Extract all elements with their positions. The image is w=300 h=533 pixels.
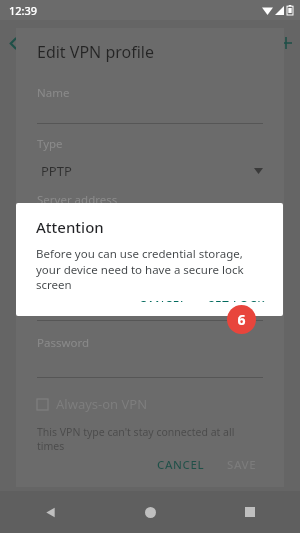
button[interactable]: SET LOCK	[201, 292, 273, 307]
button[interactable]: Add	[273, 30, 299, 56]
staticText: 6	[237, 310, 246, 329]
staticText: Edit VPN profile	[37, 41, 154, 63]
staticText: Attention	[36, 217, 104, 237]
staticText: PPTP	[41, 162, 72, 180]
staticText: 12:39	[9, 3, 38, 18]
staticText: CANCEL	[157, 457, 205, 469]
staticText: Name	[37, 85, 70, 101]
button[interactable]: SAVE	[221, 453, 263, 473]
staticText: CANCEL	[139, 297, 187, 302]
staticText: Always-on VPN	[56, 395, 148, 413]
button[interactable]: Always-on VPN	[37, 395, 148, 413]
button[interactable]: Back	[0, 491, 100, 533]
staticText: Type	[37, 136, 63, 152]
button[interactable]: Recent apps	[200, 491, 300, 533]
button[interactable]: Home	[100, 491, 200, 533]
staticText: Server address	[37, 192, 118, 208]
staticText: Password	[37, 335, 90, 351]
button[interactable]: CANCEL	[132, 292, 194, 307]
staticText: This VPN type can't stay connected at al…	[37, 425, 263, 453]
other: Step 6	[227, 305, 256, 334]
staticText: SAVE	[227, 457, 257, 469]
button[interactable]: Back	[0, 30, 26, 56]
button[interactable]: CANCEL	[151, 453, 211, 473]
staticText: Before you can use credential storage, y…	[36, 246, 265, 292]
staticText: SET LOCK	[208, 297, 266, 302]
